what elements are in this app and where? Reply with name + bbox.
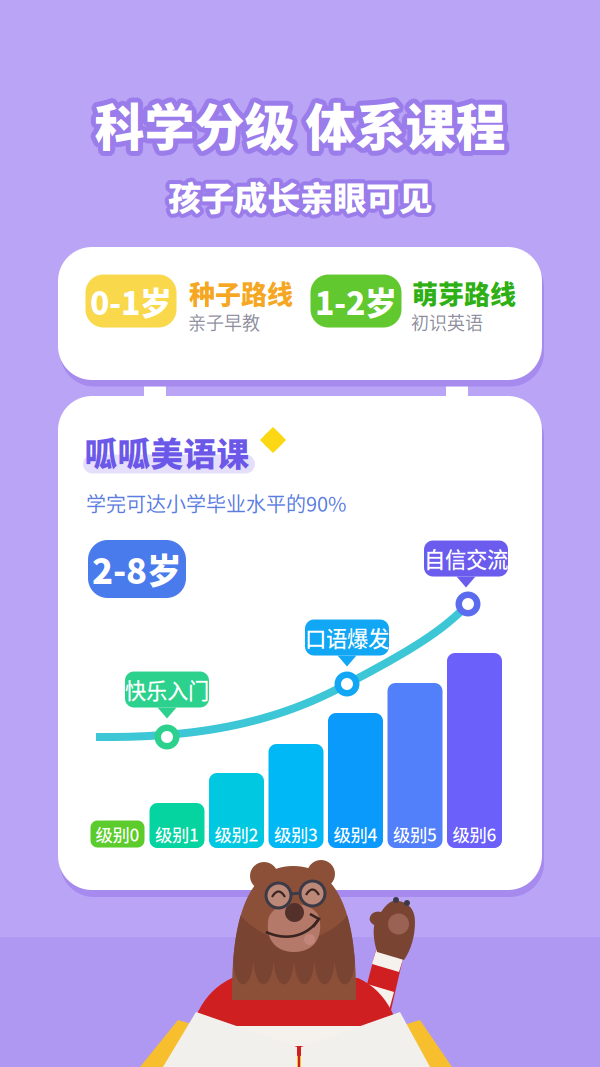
staticText: 科学分级 体系课程 (99, 86, 510, 158)
staticText: 1-2岁 (315, 278, 397, 324)
staticText: 孩子成长亲眼可见 (172, 170, 436, 219)
staticText: 科学分级 体系课程 (94, 83, 505, 155)
staticText: 科学分级 体系课程 (93, 92, 504, 165)
staticText: 孩子成长亲眼可见 (169, 176, 433, 224)
staticText: 科学分级 体系课程 (99, 90, 510, 162)
staticText: 0-1岁 (90, 278, 172, 324)
staticText: 级别5 (393, 821, 437, 847)
staticText: 科学分级 体系课程 (96, 92, 507, 165)
staticText: 孩子成长亲眼可见 (171, 169, 435, 217)
staticText: 自信交流 (424, 543, 508, 574)
staticText: 快乐入门 (125, 674, 209, 705)
staticText: 孩子成长亲眼可见 (165, 169, 429, 217)
staticText: 孩子成长亲眼可见 (164, 172, 428, 220)
staticText: 口语爆发 (305, 622, 389, 653)
staticText: 科学分级 体系课程 (94, 88, 505, 160)
staticText: 级别0 (95, 821, 139, 847)
staticText: 孩子成长亲眼可见 (165, 175, 429, 223)
staticText: 科学分级 体系课程 (94, 93, 505, 165)
staticText: 学完可达小学毕业水平的90% (86, 488, 346, 517)
staticText: 初识英语 (411, 309, 483, 335)
staticText: 孩子成长亲眼可见 (168, 176, 432, 224)
staticText: 孩子成长亲眼可见 (171, 175, 435, 223)
staticText: 孩子成长亲眼可见 (172, 173, 436, 222)
staticText: 科学分级 体系课程 (89, 88, 500, 160)
staticText: 级别3 (274, 821, 318, 847)
staticText: 科学分级 体系课程 (91, 91, 502, 164)
staticText: 科学分级 体系课程 (98, 84, 509, 157)
staticText: 孩子成长亲眼可见 (164, 173, 428, 222)
staticText: 萌芽路线 (412, 274, 516, 312)
staticText: 孩子成长亲眼可见 (168, 172, 432, 220)
staticText: 科学分级 体系课程 (90, 86, 501, 158)
staticText: 科学分级 体系课程 (90, 90, 501, 162)
staticText: 级别4 (333, 821, 377, 847)
staticText: 科学分级 体系课程 (96, 83, 507, 156)
staticText: 孩子成长亲眼可见 (168, 168, 432, 216)
staticText: 级别1 (155, 821, 199, 847)
staticText: 孩子成长亲眼可见 (169, 168, 433, 216)
staticText: 孩子成长亲眼可见 (164, 170, 428, 219)
staticText: 孩子成长亲眼可见 (166, 168, 430, 216)
staticText: 科学分级 体系课程 (91, 84, 502, 157)
staticText: 呱呱美语课 (84, 428, 249, 476)
staticText: 孩子成长亲眼可见 (172, 172, 436, 220)
staticText: 科学分级 体系课程 (98, 91, 509, 164)
staticText: 种子路线 (189, 274, 293, 312)
staticText: 科学分级 体系课程 (93, 83, 504, 156)
staticText: 科学分级 体系课程 (99, 88, 510, 160)
staticText: 级别6 (452, 821, 496, 847)
staticText: 亲子早教 (188, 309, 260, 335)
staticText: 2-8岁 (92, 544, 182, 594)
staticText: 级别2 (214, 821, 258, 847)
staticText: 孩子成长亲眼可见 (166, 176, 430, 224)
